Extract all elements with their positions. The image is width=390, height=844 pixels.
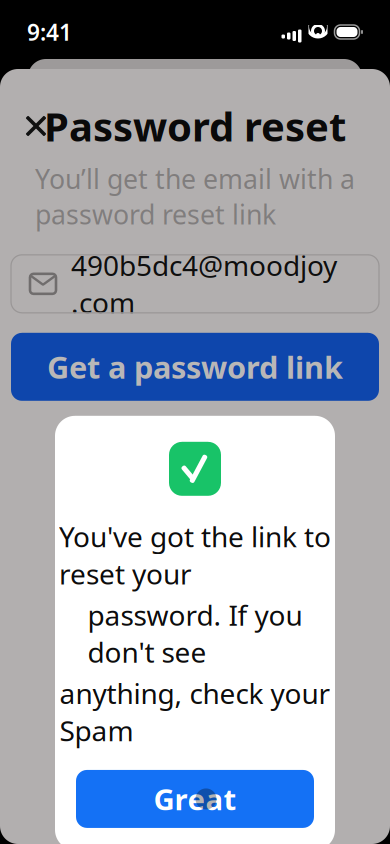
button[interactable]: Get a password link	[11, 333, 379, 401]
staticText: Great	[153, 779, 236, 818]
staticText: Password reset	[44, 99, 346, 152]
staticText: anything, check your Spam	[59, 675, 330, 749]
button[interactable]: 490b5dc4@moodjoy.com	[11, 255, 379, 313]
staticText: You’ll get the email with a password res…	[35, 161, 355, 232]
button[interactable]: Great	[76, 770, 314, 828]
staticText: password. If you don't see	[87, 596, 302, 671]
button[interactable]: Close	[12, 102, 60, 150]
staticText: 9:41	[27, 17, 72, 47]
staticText: You've got the link to reset your	[59, 518, 331, 592]
staticText: 490b5dc4@moodjoy.com	[71, 247, 337, 321]
staticText: Get a password link	[47, 346, 343, 387]
